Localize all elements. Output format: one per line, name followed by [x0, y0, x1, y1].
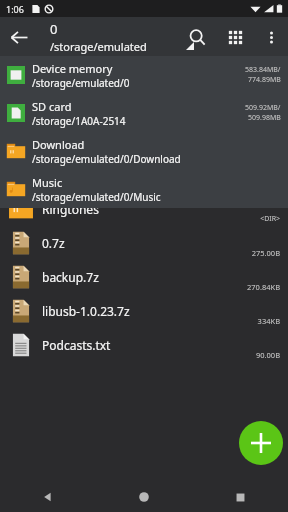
button[interactable]: Add	[239, 421, 283, 465]
button[interactable]: Pictures	[0, 124, 288, 158]
staticText: backup.7z	[42, 269, 247, 285]
staticText: 1:06	[6, 3, 24, 15]
staticText: Ringtones	[42, 201, 260, 217]
button[interactable]: backup.7z	[0, 260, 288, 294]
staticText: 270.84KB	[247, 282, 280, 292]
staticText: Device memory	[32, 61, 113, 76]
staticText: Download	[32, 137, 85, 152]
button[interactable]: Ringtones	[0, 192, 288, 226]
button[interactable]: Podcasts.txt	[0, 328, 288, 362]
button[interactable]: Notifications	[0, 90, 288, 124]
button[interactable]: Podcasts	[0, 158, 288, 192]
staticText: 0.7z	[42, 235, 251, 251]
button[interactable]: More options	[254, 20, 288, 54]
button[interactable]: Home	[96, 482, 192, 512]
button[interactable]: 0.7z	[0, 226, 288, 260]
button[interactable]: Device memory	[0, 56, 288, 94]
staticText: 0	[50, 20, 58, 38]
staticText: <DIR>	[260, 214, 280, 224]
staticText: /storage/emulated/0/Download	[32, 152, 181, 166]
staticText: Pictures	[42, 133, 260, 149]
staticText: Notifications	[42, 99, 260, 115]
button[interactable]: Recents	[192, 482, 288, 512]
staticText: SD card	[32, 99, 72, 114]
staticText: Music	[42, 65, 260, 81]
staticText: <DIR>	[260, 112, 280, 122]
staticText: 583.84MB/	[245, 65, 281, 75]
staticText: /storage/emulated/0	[32, 76, 130, 90]
staticText: 334KB	[257, 316, 280, 326]
button[interactable]: libusb-1.0.23.7z	[0, 294, 288, 328]
button[interactable]: Music	[0, 56, 288, 90]
button[interactable]: Search	[178, 18, 216, 56]
staticText: /storage/emulated	[50, 39, 147, 54]
staticText: Podcasts.txt	[42, 337, 255, 353]
button[interactable]: Grid view	[216, 18, 254, 56]
staticText: 275.00B	[251, 248, 280, 258]
staticText: <DIR>	[260, 78, 280, 88]
staticText: 509.92MB/	[245, 103, 281, 113]
staticText: 90.00B	[255, 350, 280, 360]
staticText: /storage/1A0A-2514	[32, 114, 126, 128]
staticText: 509.98MB	[248, 113, 281, 123]
button[interactable]: SD card	[0, 94, 288, 132]
staticText: libusb-1.0.23.7z	[42, 303, 257, 319]
staticText: /storage/emulated/0/Music	[32, 190, 161, 204]
button[interactable]: Music	[0, 170, 288, 208]
button[interactable]: Download	[0, 132, 288, 170]
button[interactable]: Back	[0, 18, 38, 56]
button[interactable]: Back	[0, 482, 96, 512]
staticText: 774.89MB	[248, 75, 281, 85]
staticText: Music	[32, 175, 63, 190]
staticText: Podcasts	[42, 167, 260, 183]
